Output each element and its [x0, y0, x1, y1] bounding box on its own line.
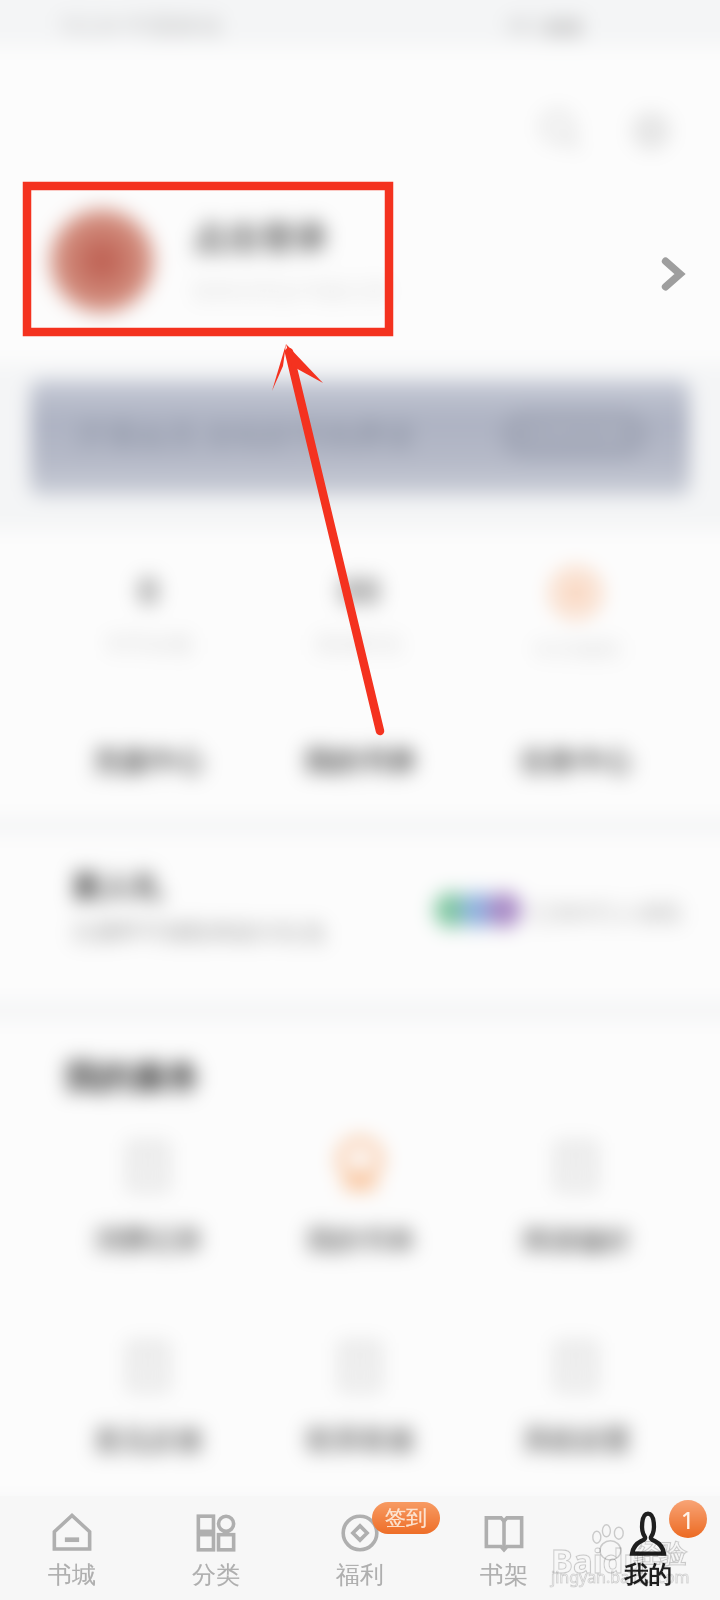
staticText: 我的书券: [304, 744, 416, 779]
button[interactable]: 意见反馈: [48, 1338, 248, 1518]
staticText: 书架: [480, 1560, 528, 1590]
staticText: 福利: [336, 1560, 384, 1590]
staticText: 开通会员 全站好书免费读: [76, 414, 414, 455]
staticText: 新人礼: [72, 868, 162, 906]
staticText: 0: [138, 566, 159, 615]
staticText: 点击登录: [192, 217, 328, 260]
staticText: 我的书单: [306, 1224, 414, 1258]
button[interactable]: 书城: [0, 1496, 144, 1600]
staticText: 经验: [634, 1538, 686, 1571]
button[interactable]: 我的书券: [250, 726, 470, 796]
button[interactable]: Search: [534, 104, 588, 158]
staticText: 4G ▮▮▮: [506, 8, 584, 41]
staticText: 10:24 中国移动: [58, 8, 222, 41]
button[interactable]: 消费记录: [48, 1138, 248, 1318]
staticText: 登录后同步书架记录: [192, 278, 390, 306]
button[interactable]: 开通会员 全站好书免费读: [30, 380, 690, 496]
staticText: 充值中心: [92, 744, 204, 779]
staticText: 阅读偏好: [522, 1224, 630, 1258]
staticText: 意见反馈: [94, 1424, 202, 1458]
staticText: 已有8万人领取: [532, 896, 684, 927]
staticText: 签到: [385, 1505, 427, 1531]
staticText: 1: [681, 1504, 695, 1535]
button[interactable]: 系统设置: [476, 1338, 676, 1518]
staticText: Baidu: [551, 1538, 645, 1583]
button[interactable]: 阅读偏好: [476, 1138, 676, 1318]
button[interactable]: 我的: [576, 1496, 720, 1600]
staticText: 阅读时长: [316, 631, 404, 659]
button[interactable]: 00: [250, 566, 470, 686]
button[interactable]: Settings: [624, 104, 678, 158]
button[interactable]: 今日福利: [466, 566, 686, 686]
button[interactable]: 新人礼: [0, 834, 720, 1002]
staticText: 系统设置: [522, 1424, 630, 1458]
button[interactable]: Open profile: [642, 244, 702, 304]
button[interactable]: 充值中心: [38, 726, 258, 796]
button[interactable]: 点击登录: [0, 192, 720, 330]
staticText: 我的服务: [64, 1056, 200, 1099]
staticText: 联系客服: [306, 1424, 414, 1458]
staticText: 书城: [48, 1560, 96, 1590]
staticText: jingyan.baidu.com: [551, 1566, 690, 1588]
button[interactable]: 福利: [288, 1496, 432, 1600]
button[interactable]: 联系客服: [260, 1338, 460, 1518]
staticText: 我的: [624, 1560, 672, 1590]
button[interactable]: 任务中心: [466, 726, 686, 796]
staticText: 任务中心: [520, 744, 632, 779]
button[interactable]: 分类: [144, 1496, 288, 1600]
button[interactable]: 书架: [432, 1496, 576, 1600]
button[interactable]: 我的书单: [260, 1138, 460, 1318]
staticText: 注册即可领取阅读大礼包: [72, 918, 325, 947]
staticText: 00: [339, 566, 381, 615]
button[interactable]: 0: [38, 566, 258, 686]
staticText: 消费记录: [94, 1224, 202, 1258]
staticText: 分类: [192, 1560, 240, 1590]
